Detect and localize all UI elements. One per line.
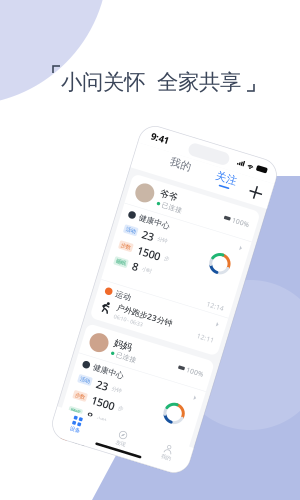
- staticText: 户外跑步23分钟: [121, 315, 179, 325]
- staticText: 设备: [112, 447, 122, 453]
- staticText: 12:11: [206, 320, 224, 329]
- staticText: 运动: [116, 303, 132, 313]
- staticText: 关注: [177, 159, 199, 172]
- button[interactable]: 发现: [141, 435, 188, 455]
- button[interactable]: 运动: [98, 299, 231, 313]
- staticText: 发现: [159, 447, 169, 453]
- staticText: 爷爷: [129, 193, 147, 204]
- button[interactable]: Add device: [210, 160, 231, 181]
- staticText: 我的: [129, 159, 151, 172]
- staticText: 已连接: [134, 362, 155, 370]
- button[interactable]: 我的: [129, 159, 151, 175]
- staticText: 健康中心: [116, 223, 148, 233]
- staticText: 06:10 - 06:33: [121, 326, 151, 334]
- staticText: 步: [152, 257, 157, 263]
- staticText: 1500: [124, 253, 148, 267]
- staticText: 健康中心: [116, 380, 148, 390]
- staticText: 分钟: [140, 240, 150, 246]
- staticText: 8: [124, 426, 130, 440]
- staticText: 活动: [107, 396, 117, 403]
- staticText: 23: [124, 236, 136, 250]
- button[interactable]: 健康中心: [98, 376, 231, 390]
- staticText: 妈妈: [129, 350, 147, 361]
- button[interactable]: 运动: [98, 456, 231, 469]
- staticText: 100%: [206, 355, 224, 364]
- staticText: 步数: [107, 257, 117, 263]
- staticText: 活动: [107, 240, 117, 246]
- button[interactable]: 设备: [93, 435, 141, 455]
- button[interactable]: 关注: [177, 159, 199, 175]
- staticText: 户外跑步23分钟: [121, 471, 179, 482]
- button[interactable]: 我的: [188, 435, 236, 455]
- staticText: 小问关怀 全家共享: [61, 69, 241, 95]
- staticText: 已连接: [134, 205, 155, 214]
- button[interactable]: 健康中心: [98, 219, 231, 233]
